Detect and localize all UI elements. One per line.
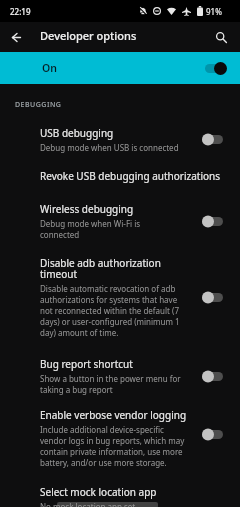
staticText: Disable automatic revocation of adb auth…: [40, 283, 180, 338]
button[interactable]: On: [0, 52, 240, 84]
staticText: DEBUGGING: [15, 100, 62, 110]
staticText: 22:19: [10, 6, 31, 17]
staticText: No mock location app set: [40, 501, 136, 507]
staticText: Show a button in the power menu for taki…: [40, 373, 181, 395]
staticText: Disable adb authorization timeout: [40, 256, 161, 281]
button[interactable]: USB debugging: [0, 126, 240, 153]
button[interactable]: Wireless debugging: [0, 202, 240, 240]
staticText: Select mock location app: [40, 485, 157, 499]
button[interactable]: Select mock location app: [0, 485, 240, 507]
staticText: 91%: [206, 6, 222, 17]
staticText: Debug mode when USB is connected: [40, 142, 179, 153]
button[interactable]: [0, 22, 30, 52]
staticText: Wireless debugging: [40, 202, 134, 216]
staticText: Enable verbose vendor logging: [40, 408, 187, 422]
staticText: Revoke USB debugging authorizations: [40, 169, 221, 183]
button[interactable]: Disable adb authorization timeout: [0, 256, 240, 338]
button[interactable]: Revoke USB debugging authorizations: [0, 169, 240, 183]
button[interactable]: Enable verbose vendor logging: [0, 408, 240, 468]
button[interactable]: [206, 22, 236, 52]
staticText: USB debugging: [40, 126, 114, 140]
staticText: Debug mode when Wi-Fi is connected: [40, 218, 141, 240]
staticText: Bug report shortcut: [40, 357, 133, 371]
button[interactable]: Bug report shortcut: [0, 357, 240, 395]
staticText: Include additional device-specific vendo…: [40, 424, 185, 468]
staticText: Developer options: [40, 28, 137, 43]
staticText: On: [42, 61, 57, 75]
